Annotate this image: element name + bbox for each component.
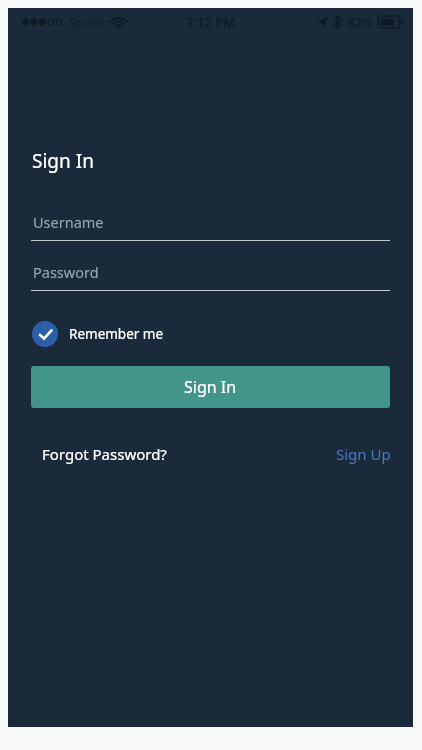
button[interactable]: Username xyxy=(31,212,390,241)
staticText: Remember me xyxy=(69,325,164,343)
button[interactable]: Forgot Password? xyxy=(38,440,171,468)
button[interactable]: Sign Up xyxy=(332,440,395,468)
button[interactable]: Remember me xyxy=(30,319,166,349)
button[interactable]: Password xyxy=(31,262,390,291)
staticText: Forgot Password? xyxy=(42,444,167,464)
staticText: 82% xyxy=(347,13,374,31)
staticText: 3:12 PM xyxy=(186,13,236,31)
staticText: Sign Up xyxy=(336,444,391,464)
staticText: Sign In xyxy=(184,376,237,398)
staticText: Password xyxy=(33,262,99,282)
staticText: Username xyxy=(33,212,104,232)
staticText: Sprint xyxy=(69,13,106,31)
staticText: Sign In xyxy=(32,148,94,174)
button[interactable]: Sign In xyxy=(31,366,390,408)
